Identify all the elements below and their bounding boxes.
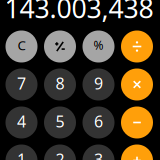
staticText: 6 — [94, 111, 103, 132]
button[interactable]: One — [5, 144, 37, 160]
staticText: 5 — [55, 111, 64, 132]
button[interactable]: Divide — [121, 30, 153, 62]
staticText: % — [93, 37, 103, 53]
staticText: 1 — [17, 149, 26, 160]
button[interactable]: Five — [44, 106, 76, 138]
button[interactable]: Clear — [5, 30, 37, 62]
button[interactable]: Seven — [5, 68, 37, 100]
button[interactable]: Plus minus — [44, 30, 76, 62]
button[interactable]: Plus — [121, 144, 153, 160]
staticText: 9 — [94, 73, 103, 94]
button[interactable]: Six — [82, 106, 114, 138]
button[interactable]: Percent — [82, 30, 114, 62]
staticText: 4 — [17, 111, 26, 132]
staticText: 143.003,438 — [4, 0, 153, 26]
staticText: 3 — [94, 149, 103, 160]
button[interactable]: Two — [44, 144, 76, 160]
staticText: 2 — [55, 149, 64, 160]
button[interactable]: Four — [5, 106, 37, 138]
button[interactable]: Eight — [44, 68, 76, 100]
button[interactable]: Three — [82, 144, 114, 160]
staticText: 8 — [55, 73, 64, 94]
button[interactable]: Minus — [121, 106, 153, 138]
button[interactable]: Nine — [82, 68, 114, 100]
staticText: 7 — [17, 73, 26, 94]
button[interactable]: Multiply — [121, 68, 153, 100]
staticText: C — [17, 36, 25, 54]
